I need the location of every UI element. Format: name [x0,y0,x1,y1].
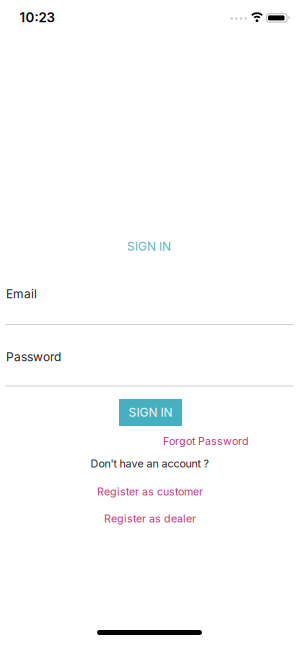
staticText: SIGN IN [128,405,172,420]
button[interactable]: Register as customer [97,485,203,498]
staticText: Password [6,350,61,364]
staticText: Forgot Password [163,435,249,447]
staticText: Register as customer [97,485,203,498]
button[interactable]: Register as dealer [104,512,196,525]
button[interactable]: Forgot Password [163,435,249,447]
staticText: Don't have an account ? [90,457,208,470]
staticText: Email [6,287,37,301]
staticText: SIGN IN [127,239,171,254]
staticText: 10:23 [19,10,54,25]
button[interactable]: SIGN IN [119,399,182,426]
staticText: Register as dealer [104,512,196,525]
